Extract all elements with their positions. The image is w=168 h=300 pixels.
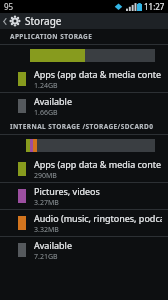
staticText: Storage — [25, 14, 62, 28]
staticText: 1.24GB — [34, 81, 58, 91]
staticText: 95 — [4, 1, 14, 12]
staticText: 3.27MB — [34, 198, 59, 208]
button[interactable]: Available — [0, 237, 168, 263]
staticText: 11:27 — [144, 1, 165, 12]
button[interactable]: Back — [0, 13, 9, 29]
staticText: Available — [34, 239, 72, 251]
button[interactable]: Pictures, videos — [0, 183, 168, 209]
staticText: Available — [34, 95, 72, 107]
staticText: 3.32MB — [34, 225, 59, 235]
staticText: APPLICATION STORAGE — [10, 32, 93, 41]
staticText: 1.66GB — [34, 108, 58, 118]
staticText: Audio (music, ringtones, podca — [34, 212, 162, 224]
staticText: Pictures, videos — [34, 185, 100, 197]
staticText: Apps (app data & media conten — [34, 158, 162, 170]
staticText: Apps (app data & media conten — [34, 68, 162, 80]
button[interactable]: Available — [0, 93, 168, 119]
button[interactable]: Apps (app data & media conten — [0, 66, 168, 92]
button[interactable]: Apps (app data & media conten — [0, 156, 168, 182]
staticText: 290MB — [34, 171, 57, 181]
button[interactable]: Audio (music, ringtones, podca — [0, 210, 168, 236]
staticText: INTERNAL STORAGE /STORAGE/SDCARD0 — [10, 122, 154, 131]
staticText: 7.21GB — [34, 252, 58, 262]
